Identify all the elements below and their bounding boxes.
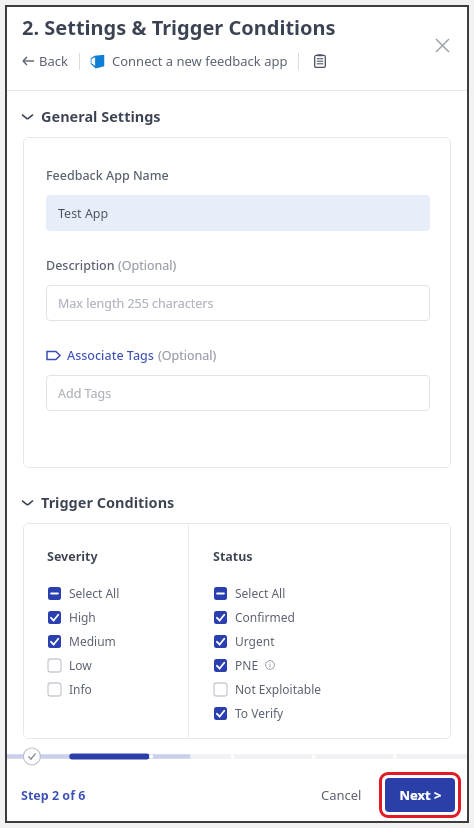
staticText: Add Tags xyxy=(58,385,112,402)
button[interactable]: Confirmed xyxy=(213,605,296,629)
staticText: Next > xyxy=(399,786,442,804)
staticText: Urgent xyxy=(235,633,275,649)
staticText: Associate Tags xyxy=(67,347,158,364)
button[interactable]: Test App xyxy=(46,195,430,231)
button[interactable]: Next > xyxy=(385,778,455,812)
staticText: PNE xyxy=(235,657,259,673)
button[interactable]: High xyxy=(47,605,97,629)
staticText: Severity xyxy=(47,548,98,565)
staticText: Description xyxy=(46,257,118,274)
staticText: Not Exploitable xyxy=(235,681,321,697)
staticText: To Verify xyxy=(235,705,284,721)
button[interactable]: General Settings xyxy=(5,104,469,128)
staticText: Info xyxy=(69,681,92,697)
staticText: (Optional) xyxy=(118,257,177,274)
staticText: Medium xyxy=(69,633,116,649)
button[interactable]: Select All xyxy=(47,581,121,605)
staticText: Feedback App Name xyxy=(46,167,169,184)
button[interactable]: PNE xyxy=(213,653,276,677)
button[interactable]: Not Exploitable xyxy=(213,677,322,701)
staticText: Max length 255 characters xyxy=(58,295,214,312)
staticText: Test App xyxy=(58,205,109,222)
button[interactable]: Connect a new feedback app xyxy=(90,49,288,73)
staticText: Connect a new feedback app xyxy=(112,52,288,70)
staticText: (Optional) xyxy=(158,347,217,364)
button[interactable]: Notes xyxy=(309,50,331,72)
button[interactable]: Cancel xyxy=(311,778,372,812)
staticText: General Settings xyxy=(41,106,161,126)
staticText: High xyxy=(69,609,96,625)
staticText: Back xyxy=(39,52,68,70)
button[interactable]: Select All xyxy=(213,581,287,605)
button[interactable]: Close xyxy=(429,32,455,58)
button[interactable]: Urgent xyxy=(213,629,276,653)
staticText: Low xyxy=(69,657,92,673)
staticText: Trigger Conditions xyxy=(41,492,175,512)
staticText: 2. Settings & Trigger Conditions xyxy=(22,14,336,41)
button[interactable]: Back xyxy=(20,49,70,73)
staticText: Step 2 of 6 xyxy=(21,787,86,804)
button[interactable]: Associate Tags xyxy=(46,347,217,364)
button[interactable]: Low xyxy=(47,653,93,677)
button[interactable]: Info xyxy=(47,677,93,701)
staticText: Select All xyxy=(69,585,120,601)
staticText: Select All xyxy=(235,585,286,601)
button[interactable]: Trigger Conditions xyxy=(5,490,469,514)
button[interactable]: Add Tags xyxy=(46,375,430,411)
staticText: Confirmed xyxy=(235,609,295,625)
button[interactable]: Medium xyxy=(47,629,117,653)
button[interactable]: Max length 255 characters xyxy=(46,285,430,321)
staticText: Status xyxy=(213,548,253,565)
staticText: Cancel xyxy=(321,786,362,804)
button[interactable]: To Verify xyxy=(213,701,285,725)
